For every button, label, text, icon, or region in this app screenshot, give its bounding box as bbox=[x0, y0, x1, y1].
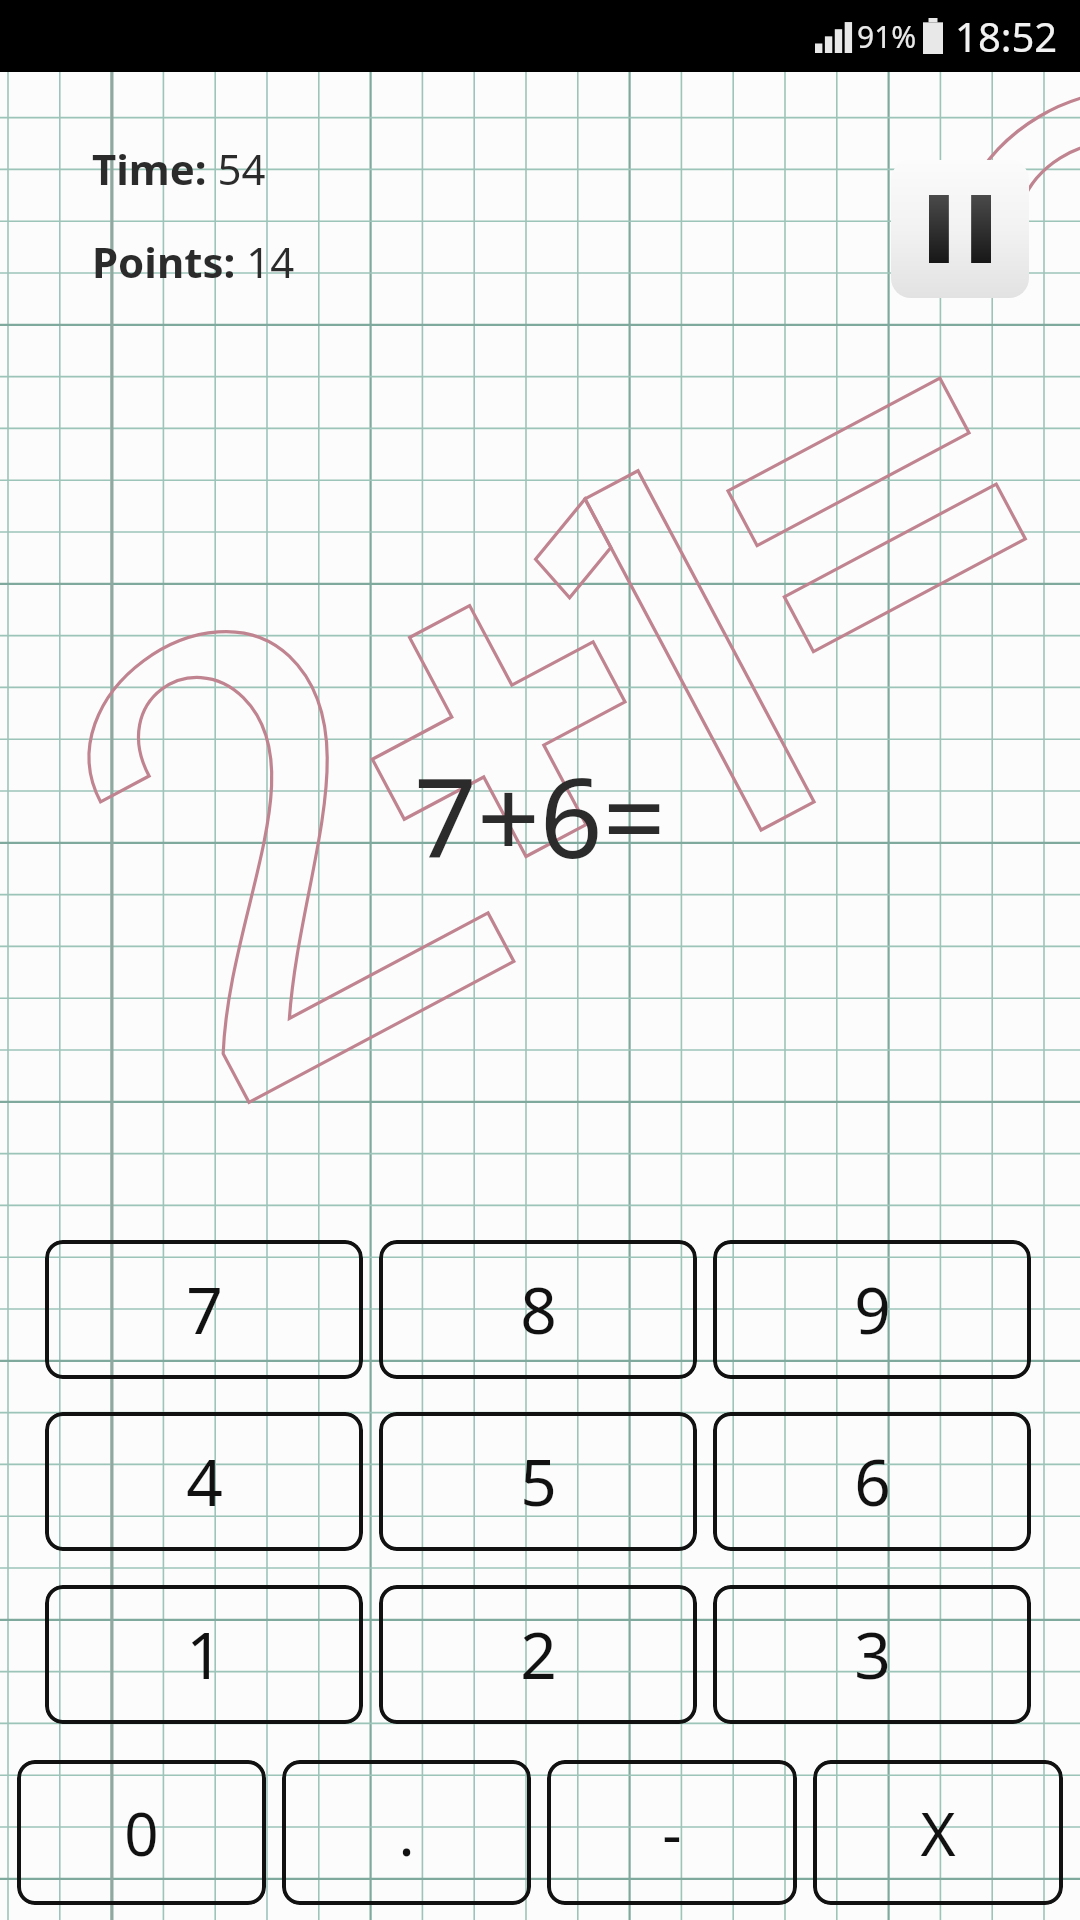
button[interactable]: - bbox=[547, 1760, 797, 1905]
staticText: 6 bbox=[854, 1438, 891, 1525]
staticText: 8 bbox=[520, 1266, 557, 1353]
staticText: 5 bbox=[520, 1438, 557, 1525]
staticText: 1 bbox=[186, 1611, 223, 1698]
staticText: Points: 14 bbox=[92, 233, 295, 290]
button[interactable]: 7 bbox=[45, 1240, 363, 1379]
staticText: 9 bbox=[854, 1266, 891, 1353]
button[interactable]: 6 bbox=[713, 1412, 1031, 1551]
button[interactable]: 3 bbox=[713, 1585, 1031, 1724]
button[interactable]: 2 bbox=[379, 1585, 697, 1724]
button[interactable]: 5 bbox=[379, 1412, 697, 1551]
staticText: - bbox=[662, 1792, 682, 1874]
staticText: 3 bbox=[854, 1611, 891, 1698]
staticText: 0 bbox=[124, 1792, 159, 1874]
button[interactable]: X bbox=[813, 1760, 1063, 1905]
staticText: . bbox=[398, 1792, 415, 1874]
button[interactable]: 4 bbox=[45, 1412, 363, 1551]
staticText: 7 bbox=[186, 1266, 223, 1353]
staticText: X bbox=[920, 1792, 956, 1874]
staticText: 91% bbox=[857, 16, 917, 57]
button[interactable]: 0 bbox=[17, 1760, 266, 1905]
button[interactable]: . bbox=[282, 1760, 531, 1905]
staticText: 7+6= bbox=[414, 740, 666, 890]
button[interactable]: Pause bbox=[891, 160, 1029, 298]
staticText: 18:52 bbox=[955, 9, 1058, 63]
staticText: Time: 54 bbox=[92, 140, 266, 197]
staticText: 2 bbox=[520, 1611, 557, 1698]
button[interactable]: 9 bbox=[713, 1240, 1031, 1379]
button[interactable]: 1 bbox=[45, 1585, 363, 1724]
staticText: 4 bbox=[186, 1438, 223, 1525]
button[interactable]: 8 bbox=[379, 1240, 697, 1379]
